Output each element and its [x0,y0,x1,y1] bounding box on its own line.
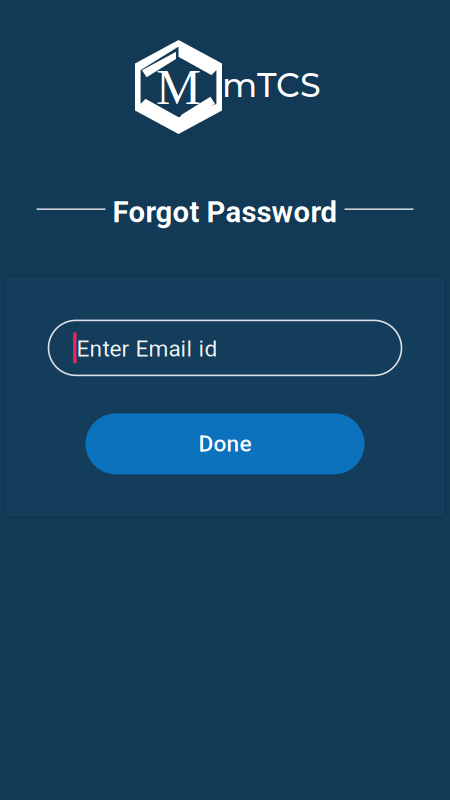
staticText: Forgot Password [112,195,337,229]
staticText: Done [198,431,251,457]
button[interactable]: Done [85,413,364,474]
staticText: mTCS [222,65,321,105]
staticText: M [156,59,201,115]
staticText: Enter Email id [76,336,217,362]
